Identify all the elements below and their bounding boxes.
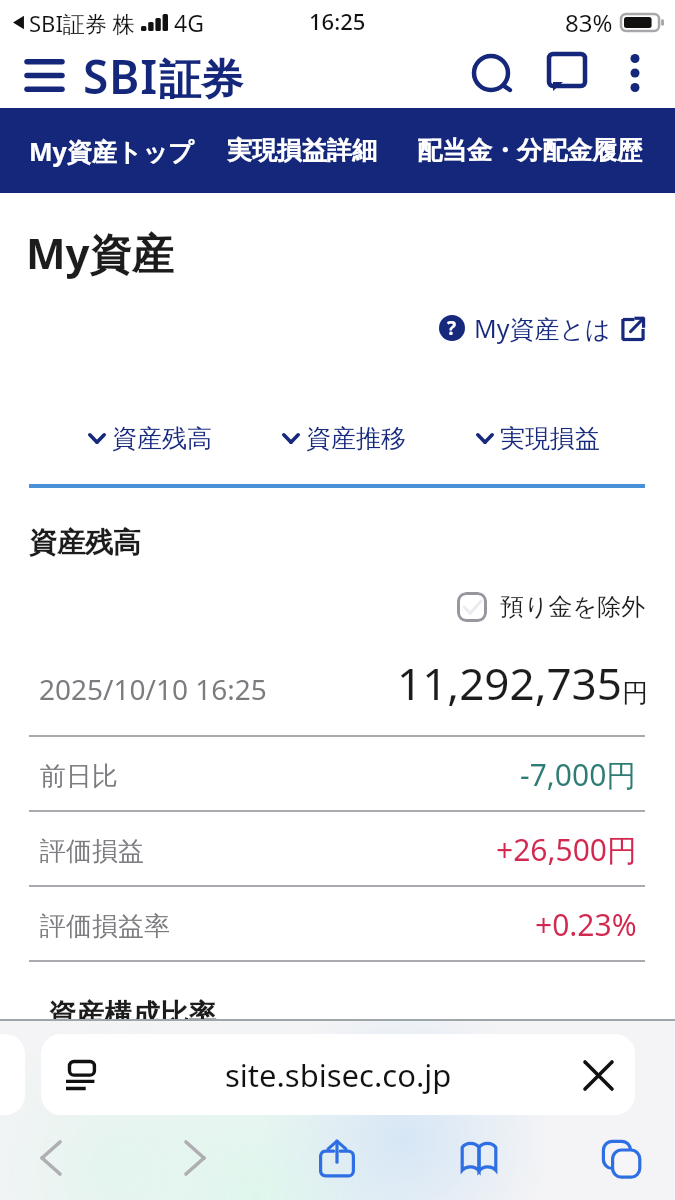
button[interactable]: Chat <box>538 44 596 102</box>
button[interactable]: 配当金・分配金履歴 <box>417 135 642 166</box>
button[interactable]: 前日比 <box>29 735 645 810</box>
button[interactable]: 実現損益 <box>476 423 600 454</box>
staticText: SBI証券 株 <box>29 8 135 38</box>
button[interactable]: 評価損益 <box>29 810 645 885</box>
button[interactable]: My資産トップ <box>29 134 194 168</box>
staticText: 11,292,735 <box>397 653 622 713</box>
staticText: -7,000円 <box>520 754 637 795</box>
staticText: SBI <box>83 45 159 108</box>
button[interactable]: Forward <box>148 1116 242 1200</box>
button[interactable]: More options <box>608 46 662 100</box>
button[interactable]: 実現損益詳細 <box>227 135 377 166</box>
button[interactable]: Back <box>4 1116 98 1200</box>
staticText: 資産残高 <box>112 423 212 454</box>
staticText: My資産トップ <box>29 134 194 168</box>
button[interactable]: 資産推移 <box>282 423 406 454</box>
button[interactable]: Stop loading <box>575 1052 621 1098</box>
staticText: 預り金を除外 <box>500 592 646 622</box>
button[interactable]: Search <box>464 44 522 102</box>
staticText: 4G <box>174 7 204 38</box>
staticText: 評価損益率 <box>40 910 170 943</box>
button[interactable]: Page settings <box>41 1034 635 1115</box>
staticText: 実現損益詳細 <box>227 135 377 166</box>
staticText: 前日比 <box>40 760 118 793</box>
button[interactable]: 評価損益率 <box>29 885 645 960</box>
staticText: +26,500円 <box>496 829 637 870</box>
staticText: 配当金・分配金履歴 <box>417 135 642 166</box>
staticText: ? <box>447 315 457 341</box>
button[interactable]: Tabs <box>574 1116 668 1200</box>
button[interactable]: 資産残高 <box>88 423 212 454</box>
staticText: 実現損益 <box>500 423 600 454</box>
staticText: 83% <box>565 6 613 39</box>
staticText: 評価損益 <box>40 835 144 868</box>
staticText: 16:25 <box>309 6 366 36</box>
staticText: 円 <box>622 677 648 710</box>
staticText: 資産推移 <box>306 423 406 454</box>
staticText: site.sbisec.co.jp <box>225 1054 452 1096</box>
button[interactable]: Bookmarks <box>432 1116 526 1200</box>
staticText: +0.23% <box>535 904 637 945</box>
button[interactable]: Menu <box>15 46 73 104</box>
button[interactable]: Share <box>290 1116 384 1200</box>
staticText: 証券 <box>159 54 243 107</box>
staticText: 資産残高 <box>29 525 141 560</box>
staticText: 資産構成比率 <box>48 997 216 1032</box>
staticText: 2025/10/10 16:25 <box>39 670 267 708</box>
staticText: My資産 <box>26 224 174 281</box>
staticText: My資産とは <box>474 311 611 345</box>
button[interactable]: ? <box>0 311 645 345</box>
button[interactable]: 預り金を除外 <box>0 592 646 622</box>
button[interactable]: Page settings <box>54 1049 106 1101</box>
